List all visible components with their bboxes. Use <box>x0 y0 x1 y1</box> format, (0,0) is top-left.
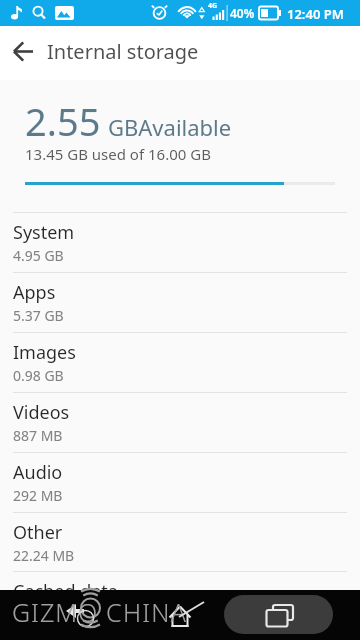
staticText: 40% <box>230 5 255 21</box>
staticText: Internal storage <box>47 38 199 65</box>
staticText: Cached data <box>13 579 118 604</box>
staticText: Apps <box>13 280 56 305</box>
staticText: Other <box>13 520 63 545</box>
staticText: 22.24 MB <box>13 546 75 565</box>
staticText: 2.55 <box>25 95 101 147</box>
staticText: 12:40 PM <box>287 5 344 23</box>
staticText: 13.45 GB used of 16.00 GB <box>25 144 211 164</box>
button[interactable]: Images <box>0 332 360 392</box>
staticText: System <box>13 220 75 245</box>
staticText: 4.95 GB <box>13 246 64 265</box>
button[interactable]: System <box>0 212 360 272</box>
staticText: 0.98 GB <box>13 366 64 385</box>
staticText: 4G <box>208 1 218 11</box>
staticText: GBAvailable <box>108 112 232 142</box>
button[interactable] <box>155 590 205 640</box>
staticText: 120 MB <box>13 605 63 624</box>
staticText: GIZMO <box>12 595 99 629</box>
button[interactable]: Other <box>0 512 360 571</box>
staticText: Audio <box>13 460 63 485</box>
button[interactable]: Videos <box>0 392 360 452</box>
button[interactable] <box>4 33 44 73</box>
button[interactable] <box>224 595 333 634</box>
button[interactable]: Audio <box>0 452 360 512</box>
staticText: CHINA <box>106 595 188 629</box>
staticText: 292 MB <box>13 486 63 505</box>
staticText: 887 MB <box>13 426 63 445</box>
button[interactable]: Cached data <box>0 571 360 640</box>
staticText: Images <box>13 340 76 365</box>
button[interactable]: Apps <box>0 272 360 332</box>
staticText: Videos <box>13 400 70 425</box>
button[interactable] <box>50 590 100 640</box>
staticText: 5.37 GB <box>13 306 64 325</box>
